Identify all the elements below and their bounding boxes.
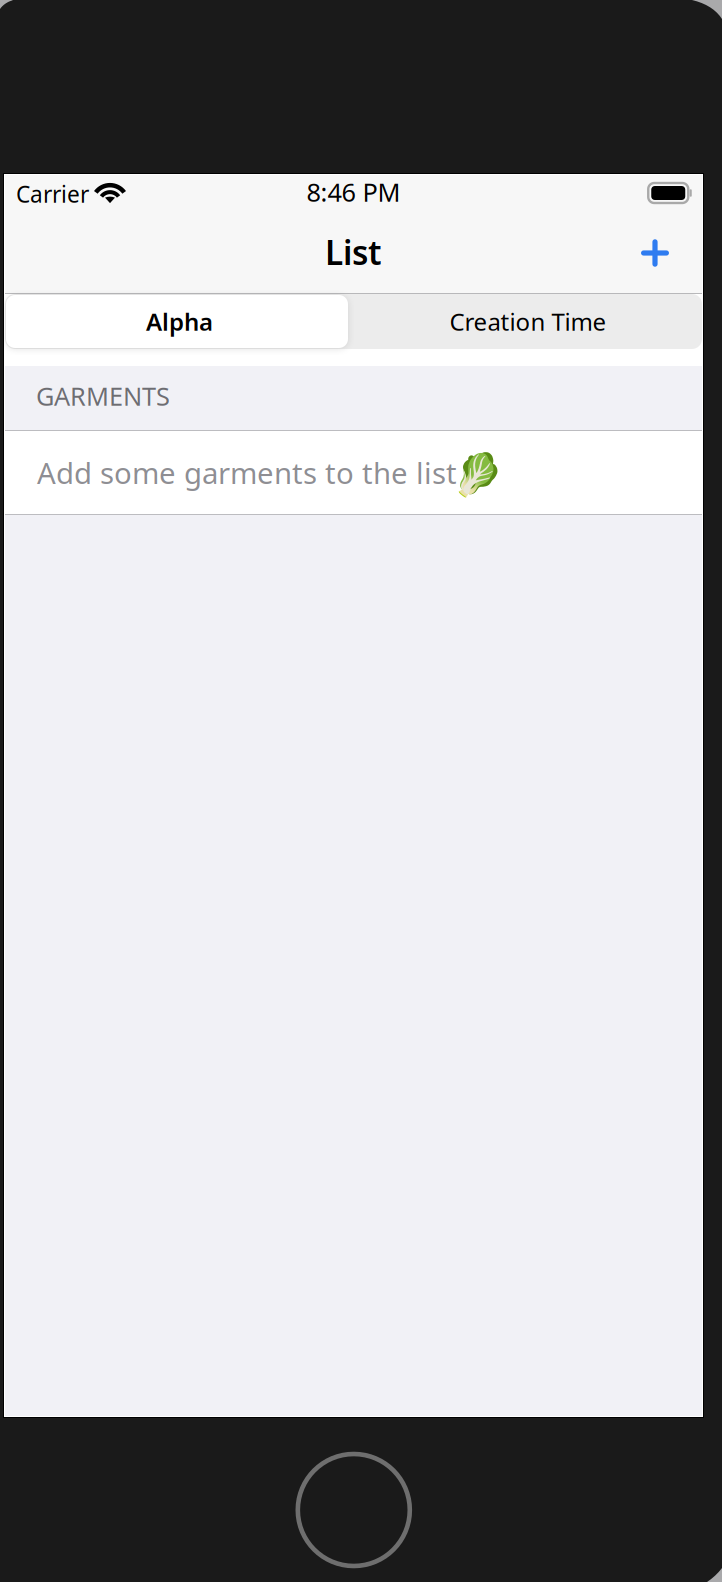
staticText: 🥬 [452, 451, 503, 498]
button[interactable]: Creation Time [354, 294, 702, 349]
staticText: Alpha [146, 306, 213, 337]
button[interactable]: Alpha [5, 294, 354, 349]
staticText: GARMENTS [36, 379, 170, 413]
staticText: List [325, 230, 382, 274]
staticText: 8:46 PM [306, 175, 400, 209]
staticText: Creation Time [449, 306, 606, 337]
staticText: Carrier [16, 179, 89, 209]
button[interactable]: Add [627, 225, 681, 279]
staticText: Add some garments to the list [37, 453, 457, 492]
